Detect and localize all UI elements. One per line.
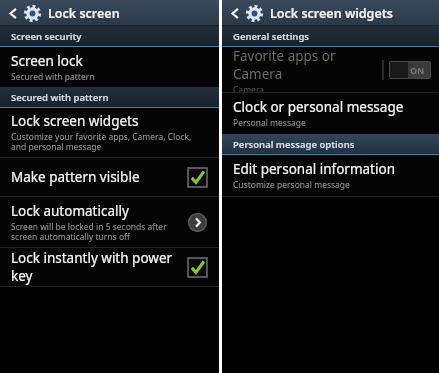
staticText: Personal message options <box>233 138 355 151</box>
button[interactable]: Toggle checkbox <box>183 163 211 191</box>
button[interactable]: Back <box>227 5 243 21</box>
button[interactable]: Edit personal information <box>222 155 439 196</box>
staticText: General settings <box>233 30 310 43</box>
button[interactable]: More options <box>183 208 211 236</box>
staticText: Make pattern visible <box>11 168 140 186</box>
button[interactable]: Lock screen widgets <box>0 108 219 157</box>
staticText: Lock screen <box>48 5 120 22</box>
staticText: Lock screen widgets <box>11 112 139 130</box>
button[interactable]: Lock instantly with power key <box>0 248 219 286</box>
staticText: Secured with pattern <box>11 91 109 104</box>
button[interactable]: Lock automatically <box>0 197 219 247</box>
button[interactable]: Favorite apps or Camera toggle <box>382 58 431 82</box>
button[interactable]: Toggle checkbox <box>183 253 211 281</box>
button[interactable]: Favorite apps or Camera <box>222 47 439 92</box>
button[interactable]: Screen lock <box>0 47 219 87</box>
staticText: Customize your favorite apps, Camera, Cl… <box>11 131 192 153</box>
staticText: Lock screen widgets <box>270 5 393 22</box>
staticText: Personal message <box>233 117 306 129</box>
staticText: Customize personal message <box>233 179 350 191</box>
staticText: Screen will be locked in 5 seconds after… <box>11 221 167 243</box>
staticText: Edit personal information <box>233 160 395 178</box>
button[interactable]: Make pattern visible <box>0 158 219 196</box>
staticText: Lock automatically <box>11 202 129 220</box>
staticText: ON <box>410 64 425 76</box>
staticText: Screen security <box>11 30 82 43</box>
staticText: Camera <box>233 84 264 92</box>
staticText: Screen lock <box>11 52 83 70</box>
button[interactable]: Clock or personal message <box>222 93 439 134</box>
staticText: Favorite apps or Camera <box>233 47 382 83</box>
staticText: Secured with pattern <box>11 71 95 83</box>
staticText: Clock or personal message <box>233 98 404 116</box>
button[interactable]: Back <box>5 5 21 21</box>
staticText: Lock instantly with power key <box>11 249 183 285</box>
